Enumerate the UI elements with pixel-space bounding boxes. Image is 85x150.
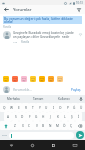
button[interactable]: İ xyxy=(75,112,82,121)
button[interactable]: Backspace xyxy=(75,121,85,130)
button[interactable]: V xyxy=(33,121,40,130)
button[interactable]: L xyxy=(61,112,68,121)
button[interactable]: I xyxy=(50,103,57,112)
staticText: Yanıtla xyxy=(3,25,12,29)
button[interactable]: Emoji reaction xyxy=(3,76,9,82)
staticText: Y xyxy=(39,106,41,110)
staticText: H xyxy=(42,115,45,119)
button[interactable]: U xyxy=(43,103,50,112)
staticText: Bu yorumun değeri çok fazla, lütfen dikk… xyxy=(4,16,81,24)
staticText: Gezginefe Buradaki emoji bastırılar, yüz… xyxy=(13,31,78,39)
staticText: ?123 xyxy=(2,134,7,137)
button[interactable]: G xyxy=(33,112,40,121)
button[interactable]: Ş xyxy=(68,112,75,121)
staticText: Tamam xyxy=(33,97,44,101)
staticText: Yanıtla xyxy=(21,40,30,43)
staticText: Z xyxy=(14,124,16,128)
staticText: N xyxy=(49,124,52,128)
button[interactable]: O xyxy=(57,103,64,112)
button[interactable]: Emoji reaction xyxy=(30,76,36,82)
staticText: S xyxy=(15,115,17,119)
staticText: E xyxy=(18,106,20,110)
button[interactable] xyxy=(9,132,74,139)
staticText: I xyxy=(53,106,55,110)
button[interactable]: X xyxy=(19,121,26,130)
staticText: Yorum ekle... xyxy=(13,88,70,92)
button[interactable]: Ü xyxy=(78,103,85,112)
staticText: V xyxy=(36,124,38,128)
button[interactable]: H xyxy=(40,112,47,121)
button[interactable]: Emoji reaction xyxy=(12,76,18,82)
button[interactable]: Like xyxy=(78,32,82,36)
button[interactable]: S xyxy=(12,112,19,121)
staticText: J xyxy=(50,115,51,119)
button[interactable]: Back xyxy=(3,6,10,13)
button[interactable]: D xyxy=(19,112,26,121)
button[interactable]: E xyxy=(15,103,22,112)
button[interactable]: Symbols xyxy=(1,131,8,139)
staticText: Paylaş xyxy=(71,88,81,92)
button[interactable]: Recents xyxy=(43,140,64,150)
button[interactable]: Ö xyxy=(61,121,68,130)
button[interactable]: Q xyxy=(0,103,8,112)
button[interactable]: Switch keyboard xyxy=(64,140,85,150)
staticText: O xyxy=(59,106,62,110)
button[interactable]: R xyxy=(22,103,29,112)
button[interactable]: B xyxy=(40,121,47,130)
button[interactable]: Voice input xyxy=(76,95,85,103)
staticText: L xyxy=(64,115,66,119)
staticText: P xyxy=(67,106,69,110)
staticText: M xyxy=(56,124,59,128)
staticText: Ş xyxy=(71,115,73,119)
button[interactable]: T xyxy=(29,103,36,112)
button[interactable]: Ç xyxy=(68,121,75,130)
button[interactable]: Emoji reaction xyxy=(57,76,63,82)
button[interactable]: Emoji reaction xyxy=(21,76,27,82)
button[interactable]: Send xyxy=(76,131,84,139)
staticText: G xyxy=(35,115,38,119)
staticText: Yorumlar xyxy=(13,7,32,13)
staticText: T xyxy=(32,106,34,110)
button[interactable]: Tamam xyxy=(26,95,51,103)
staticText: B xyxy=(42,124,45,128)
button[interactable]: Z xyxy=(11,121,19,130)
staticText: R xyxy=(25,106,27,110)
button[interactable]: Hide keyboard xyxy=(0,140,22,150)
staticText: D xyxy=(21,115,24,119)
staticText: Ö xyxy=(63,124,66,128)
button[interactable]: Home xyxy=(22,140,43,150)
button[interactable]: A xyxy=(4,112,12,121)
staticText: W xyxy=(10,106,13,110)
button[interactable]: Paylaş xyxy=(70,88,82,92)
button[interactable]: N xyxy=(47,121,54,130)
button[interactable]: Filter xyxy=(75,6,82,13)
staticText: Merhaba xyxy=(7,97,20,101)
staticText: F xyxy=(29,115,31,119)
button[interactable]: Emoji reaction xyxy=(48,76,54,82)
button[interactable]: F xyxy=(26,112,33,121)
button[interactable]: P xyxy=(64,103,71,112)
button[interactable]: Kullanıcı xyxy=(51,95,76,103)
staticText: Q xyxy=(3,106,6,110)
button[interactable]: J xyxy=(47,112,54,121)
button[interactable]: Ğ xyxy=(71,103,78,112)
staticText: U xyxy=(45,106,48,110)
button[interactable]: M xyxy=(54,121,61,130)
staticText: A xyxy=(7,115,10,119)
button[interactable]: Merhaba xyxy=(0,95,26,103)
button[interactable]: K xyxy=(54,112,61,121)
staticText: C xyxy=(28,124,31,128)
button[interactable]: Gezginefe Buradaki emoji bastırılar, yüz… xyxy=(0,29,85,44)
staticText: X xyxy=(22,124,24,128)
staticText: K xyxy=(57,115,59,119)
button[interactable]: Shift xyxy=(0,121,11,130)
button[interactable]: W xyxy=(8,103,15,112)
staticText: İ xyxy=(78,115,80,119)
button[interactable]: Y xyxy=(36,103,43,112)
button[interactable]: Emoji reaction xyxy=(39,76,45,82)
staticText: Ü xyxy=(80,106,83,110)
staticText: 10:13 xyxy=(76,1,83,5)
button[interactable]: C xyxy=(26,121,33,130)
staticText: Ç xyxy=(70,124,73,128)
staticText: Ğ xyxy=(73,106,76,110)
